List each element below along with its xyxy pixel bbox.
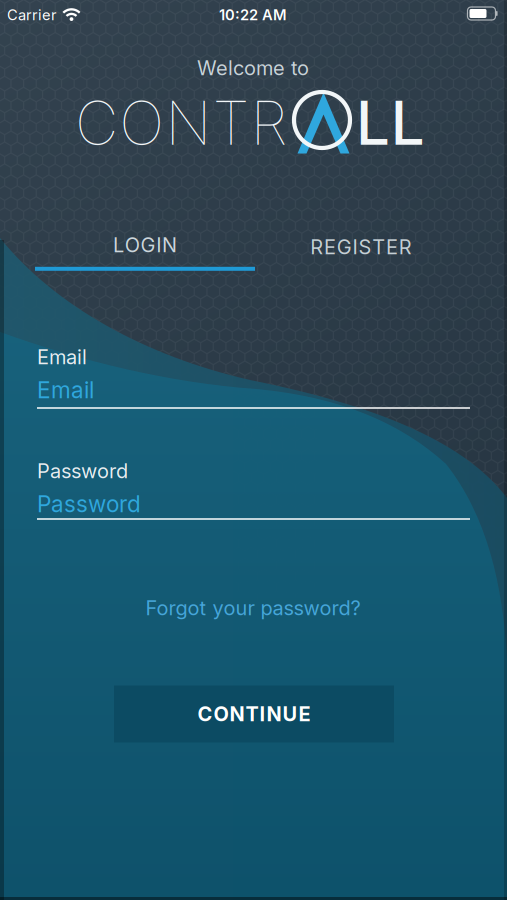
staticText: Password [37, 491, 141, 517]
staticText: Forgot your password? [145, 596, 360, 620]
staticText: Welcome to [197, 56, 309, 80]
staticText: Password [37, 459, 128, 483]
staticText: 10:22 AM [219, 6, 287, 24]
staticText: Carrier [7, 6, 57, 24]
button[interactable]: LOGIN [35, 233, 255, 271]
button[interactable]: Forgot your password? [145, 596, 360, 620]
button[interactable]: REGISTER [251, 227, 471, 267]
button[interactable]: Password [37, 483, 470, 525]
staticText: CONTR [75, 88, 287, 158]
staticText: LOGIN [113, 233, 177, 257]
staticText: REGISTER [310, 235, 412, 259]
button[interactable]: Email [37, 369, 470, 411]
staticText: LL [356, 88, 425, 158]
staticText: Email [37, 345, 87, 369]
staticText: CONTINUE [197, 702, 310, 726]
staticText: Email [37, 377, 94, 403]
button[interactable]: CONTINUE [114, 685, 394, 742]
